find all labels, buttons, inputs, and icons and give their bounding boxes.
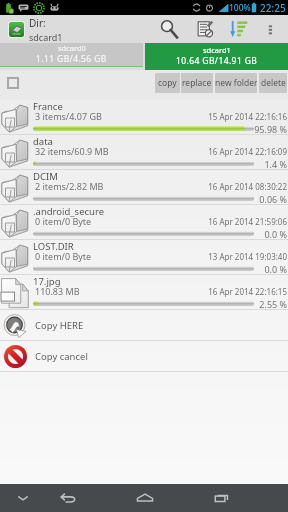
- staticText: 95.98 %: [222, 123, 287, 135]
- staticText: replace: [182, 77, 212, 89]
- button[interactable]: DCIM: [0, 170, 288, 205]
- staticText: 0 item/0 Byte: [35, 250, 92, 262]
- staticText: 32 items/60.9 MB: [35, 145, 109, 157]
- staticText: 15 Apr 2014 22:16:16: [188, 111, 287, 122]
- button[interactable]: Search: [152, 15, 186, 43]
- button[interactable]: 17.jpg: [0, 275, 288, 310]
- button[interactable]: delete: [259, 73, 287, 93]
- staticText: Copy HERE: [35, 319, 84, 332]
- staticText: sdcard0: [58, 43, 86, 53]
- staticText: 16 Apr 2014 22:16:15: [188, 286, 287, 297]
- staticText: 3 items/4.07 GB: [35, 110, 102, 122]
- button[interactable]: LOST.DIR: [0, 240, 288, 275]
- staticText: 1.11 GB/4.56 GB: [36, 53, 107, 65]
- staticText: new folder: [215, 77, 257, 89]
- button[interactable]: Home: [122, 484, 167, 512]
- staticText: 0.0 %: [222, 263, 287, 275]
- button[interactable]: More options: [256, 15, 284, 43]
- staticText: 100%: [229, 2, 251, 14]
- staticText: Dir:: [29, 16, 46, 30]
- button[interactable]: Sort: [222, 15, 256, 43]
- button[interactable]: replace: [181, 73, 213, 93]
- button[interactable]: Select all: [7, 77, 19, 89]
- staticText: 2.55 %: [222, 298, 287, 310]
- staticText: France: [33, 100, 63, 113]
- staticText: Copy cancel: [35, 350, 88, 363]
- staticText: .android_secure: [33, 205, 105, 218]
- button[interactable]: Hide keyboard: [0, 484, 45, 512]
- staticText: DCIM: [33, 170, 58, 183]
- staticText: 17.jpg: [33, 275, 61, 288]
- button[interactable]: France: [0, 100, 288, 135]
- staticText: 16 Apr 2014 08:30:22: [188, 181, 287, 192]
- staticText: LOST.DIR: [33, 240, 74, 253]
- button[interactable]: new folder: [215, 73, 257, 93]
- staticText: 13 Apr 2014 19:03:40: [188, 251, 287, 262]
- button[interactable]: .android_secure: [0, 205, 288, 240]
- staticText: sdcard1: [203, 45, 231, 55]
- button[interactable]: copy: [155, 73, 180, 93]
- button[interactable]: Copy HERE: [0, 310, 288, 341]
- staticText: 0.06 %: [222, 193, 287, 205]
- staticText: 0 item/0 Byte: [35, 215, 92, 227]
- staticText: 0.0 %: [222, 228, 287, 240]
- staticText: copy: [158, 77, 177, 89]
- staticText: 16 Apr 2014 21:59:06: [188, 216, 287, 227]
- button[interactable]: sdcard1: [145, 43, 288, 70]
- staticText: 10.64 GB/14.91 GB: [176, 55, 258, 67]
- staticText: 110.83 MB: [35, 285, 80, 297]
- button[interactable]: Storage: [9, 22, 24, 37]
- button[interactable]: Recents: [199, 484, 244, 512]
- button[interactable]: Copy cancel: [0, 341, 288, 372]
- staticText: 16 Apr 2014 22:16:09: [188, 146, 287, 157]
- button[interactable]: data: [0, 135, 288, 170]
- staticText: 2 items/2.82 MB: [35, 180, 104, 192]
- staticText: data: [33, 135, 53, 148]
- staticText: 22:25: [260, 1, 286, 15]
- button[interactable]: Back: [45, 484, 90, 512]
- staticText: sdcard1: [29, 31, 63, 43]
- staticText: delete: [261, 77, 286, 89]
- button[interactable]: Select: [188, 15, 222, 43]
- staticText: 1.4 %: [222, 158, 287, 170]
- button[interactable]: sdcard0: [0, 43, 143, 67]
